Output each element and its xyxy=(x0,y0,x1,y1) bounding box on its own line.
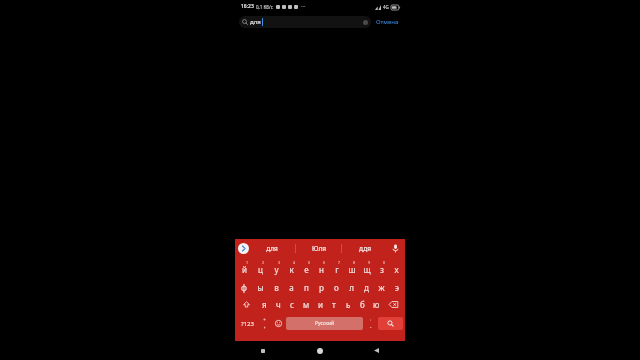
staticText: м xyxy=(303,299,310,310)
button[interactable]: в xyxy=(268,277,284,295)
staticText: ч xyxy=(276,299,281,310)
button[interactable]: для xyxy=(249,239,295,258)
button[interactable]: ч xyxy=(271,295,285,313)
staticText: к xyxy=(289,264,294,275)
staticText: для xyxy=(266,244,278,253)
button[interactable]: Voice input xyxy=(387,239,403,258)
button[interactable]: Search options xyxy=(238,243,249,254)
staticText: ш xyxy=(348,264,356,275)
staticText: д xyxy=(364,282,369,293)
staticText: б xyxy=(360,299,365,310)
button[interactable]: с xyxy=(285,295,299,313)
staticText: 2 xyxy=(262,260,265,265)
button[interactable]: 7 xyxy=(329,259,344,277)
button[interactable]: 2 xyxy=(252,259,268,277)
staticText: Русский xyxy=(315,320,335,327)
button[interactable]: ф xyxy=(236,277,252,295)
staticText: л xyxy=(349,282,354,293)
staticText: , xyxy=(264,322,266,330)
button[interactable]: л xyxy=(344,277,359,295)
button[interactable]: 1 xyxy=(236,259,252,277)
button[interactable]: э xyxy=(389,277,404,295)
staticText: н xyxy=(319,264,324,275)
staticText: Юля xyxy=(312,244,326,253)
button[interactable]: Отмена xyxy=(374,17,401,27)
staticText: 1 xyxy=(246,260,249,265)
staticText: ь xyxy=(346,299,351,310)
button[interactable]: ддя xyxy=(342,239,387,258)
staticText: з xyxy=(380,264,384,275)
staticText: и xyxy=(318,299,323,310)
button[interactable]: Русский xyxy=(286,317,363,330)
staticText: ы xyxy=(257,282,264,293)
staticText: ж xyxy=(378,282,385,293)
staticText: п xyxy=(304,282,309,293)
staticText: й xyxy=(242,264,247,275)
button[interactable]: 9 xyxy=(359,259,374,277)
button[interactable]: ?123 xyxy=(237,315,257,332)
button[interactable]: Home xyxy=(291,341,348,360)
button[interactable]: 6 xyxy=(314,259,329,277)
button[interactable]: Clear xyxy=(363,20,368,25)
button[interactable]: Shift xyxy=(236,295,257,313)
staticText: для xyxy=(250,18,261,26)
staticText: : xyxy=(370,317,372,322)
staticText: ц xyxy=(258,264,263,275)
staticText: 7 xyxy=(338,260,341,265)
staticText: в xyxy=(274,282,279,293)
button[interactable]: ы xyxy=(252,277,268,295)
button[interactable]: ь xyxy=(341,295,355,313)
staticText: ю xyxy=(373,299,380,310)
staticText: р xyxy=(319,282,324,293)
staticText: 0 xyxy=(383,260,386,265)
staticText: ф xyxy=(241,282,247,293)
button[interactable]: я xyxy=(257,295,271,313)
button[interactable]: х xyxy=(389,259,404,277)
staticText: 4G xyxy=(383,4,389,10)
staticText: э xyxy=(395,282,399,293)
button[interactable]: ю xyxy=(369,295,383,313)
button[interactable]: Comma xyxy=(257,315,271,332)
staticText: ••• xyxy=(301,4,306,9)
button[interactable]: о xyxy=(329,277,344,295)
button[interactable]: Search xyxy=(378,317,403,330)
staticText: 4 xyxy=(293,260,296,265)
button[interactable]: ж xyxy=(374,277,389,295)
staticText: е xyxy=(304,264,309,275)
staticText: о xyxy=(334,282,339,293)
button[interactable]: Back xyxy=(348,341,405,360)
staticText: я xyxy=(262,299,267,310)
staticText: 8 xyxy=(353,260,356,265)
button[interactable]: 5 xyxy=(299,259,314,277)
button[interactable]: р xyxy=(314,277,329,295)
staticText: Отмена xyxy=(376,18,399,26)
staticText: 5 xyxy=(308,260,311,265)
button[interactable]: д xyxy=(359,277,374,295)
button[interactable]: для xyxy=(239,16,371,28)
staticText: г xyxy=(335,264,339,275)
staticText: х xyxy=(394,264,399,275)
staticText: а xyxy=(289,282,294,293)
button[interactable]: Period xyxy=(364,315,378,332)
staticText: 16:23 xyxy=(241,3,254,10)
button[interactable]: а xyxy=(284,277,299,295)
staticText: с xyxy=(290,299,294,310)
button[interactable]: 8 xyxy=(344,259,359,277)
button[interactable]: Backspace xyxy=(383,295,404,313)
button[interactable]: т xyxy=(327,295,341,313)
button[interactable]: п xyxy=(299,277,314,295)
button[interactable]: Emoji xyxy=(271,315,285,332)
button[interactable]: и xyxy=(313,295,327,313)
staticText: т xyxy=(332,299,336,310)
button[interactable]: Юля xyxy=(296,239,341,258)
button[interactable]: 0 xyxy=(374,259,389,277)
staticText: 3 xyxy=(278,260,281,265)
staticText: . xyxy=(370,322,372,330)
button[interactable]: м xyxy=(299,295,313,313)
button[interactable]: б xyxy=(355,295,369,313)
button[interactable]: 4 xyxy=(284,259,299,277)
button[interactable]: 3 xyxy=(268,259,284,277)
button[interactable]: Recents xyxy=(235,341,291,360)
staticText: ддя xyxy=(359,244,371,253)
staticText: 9 xyxy=(368,260,371,265)
